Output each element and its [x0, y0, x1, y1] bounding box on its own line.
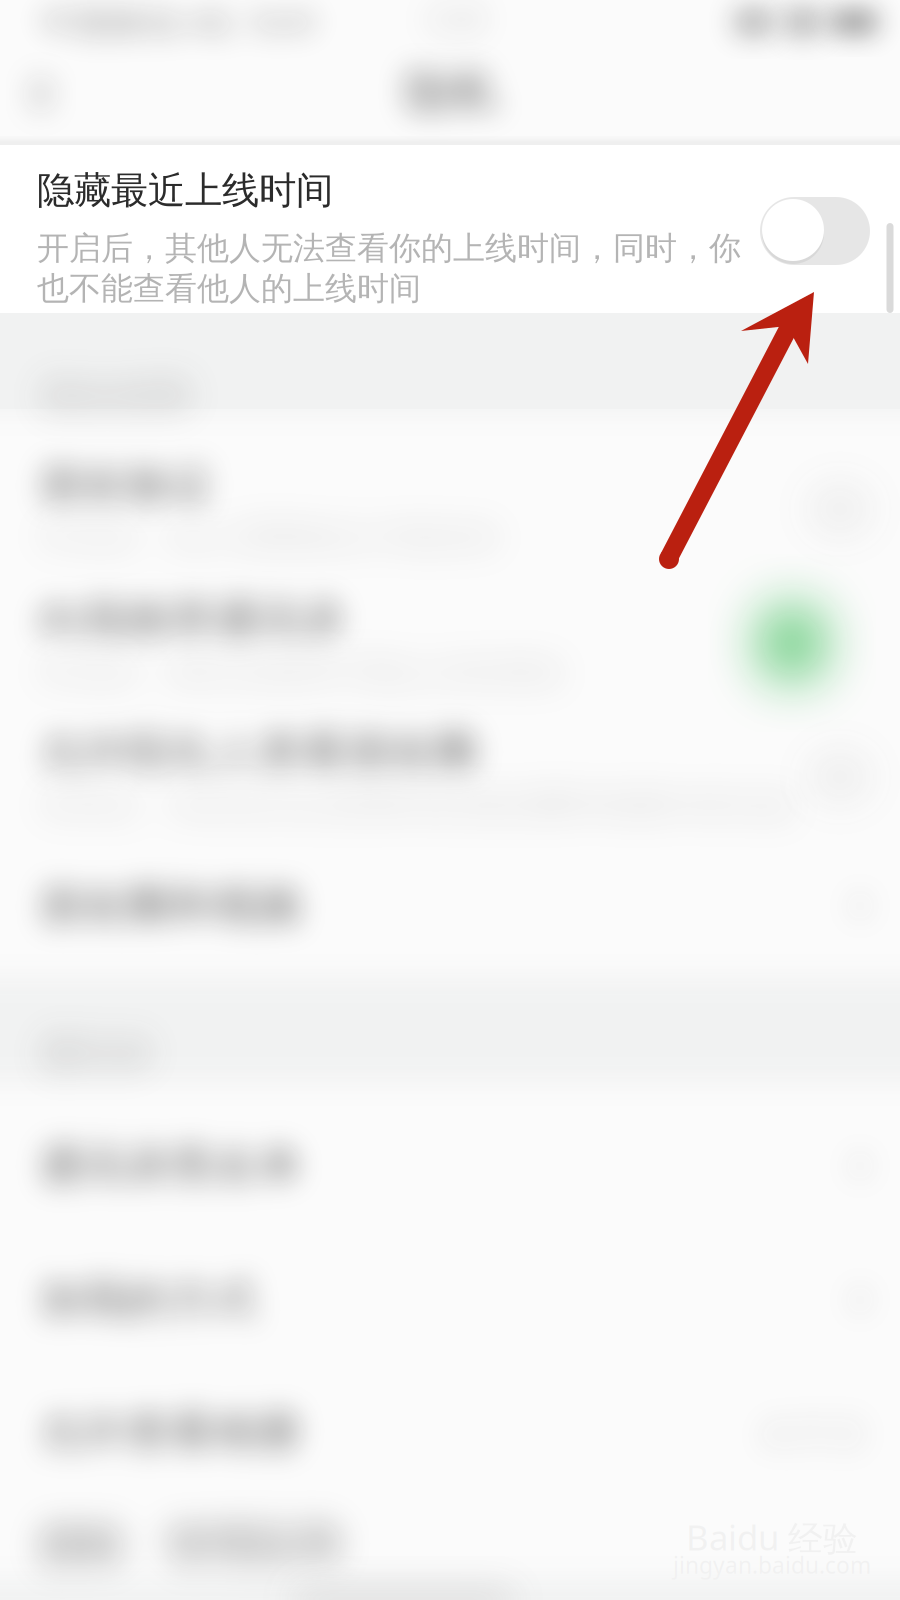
- staticText: 开启后，其他人无法查看你的上线时间，同时，你也不能查看他人的上线时间: [37, 228, 741, 309]
- button[interactable]: 隐藏最近上线时间: [0, 145, 900, 313]
- staticText: 隐藏最近上线时间: [37, 167, 333, 214]
- staticText: jingyan.baidu.com: [673, 1550, 871, 1580]
- staticText: Baidu 经验: [686, 1513, 858, 1561]
